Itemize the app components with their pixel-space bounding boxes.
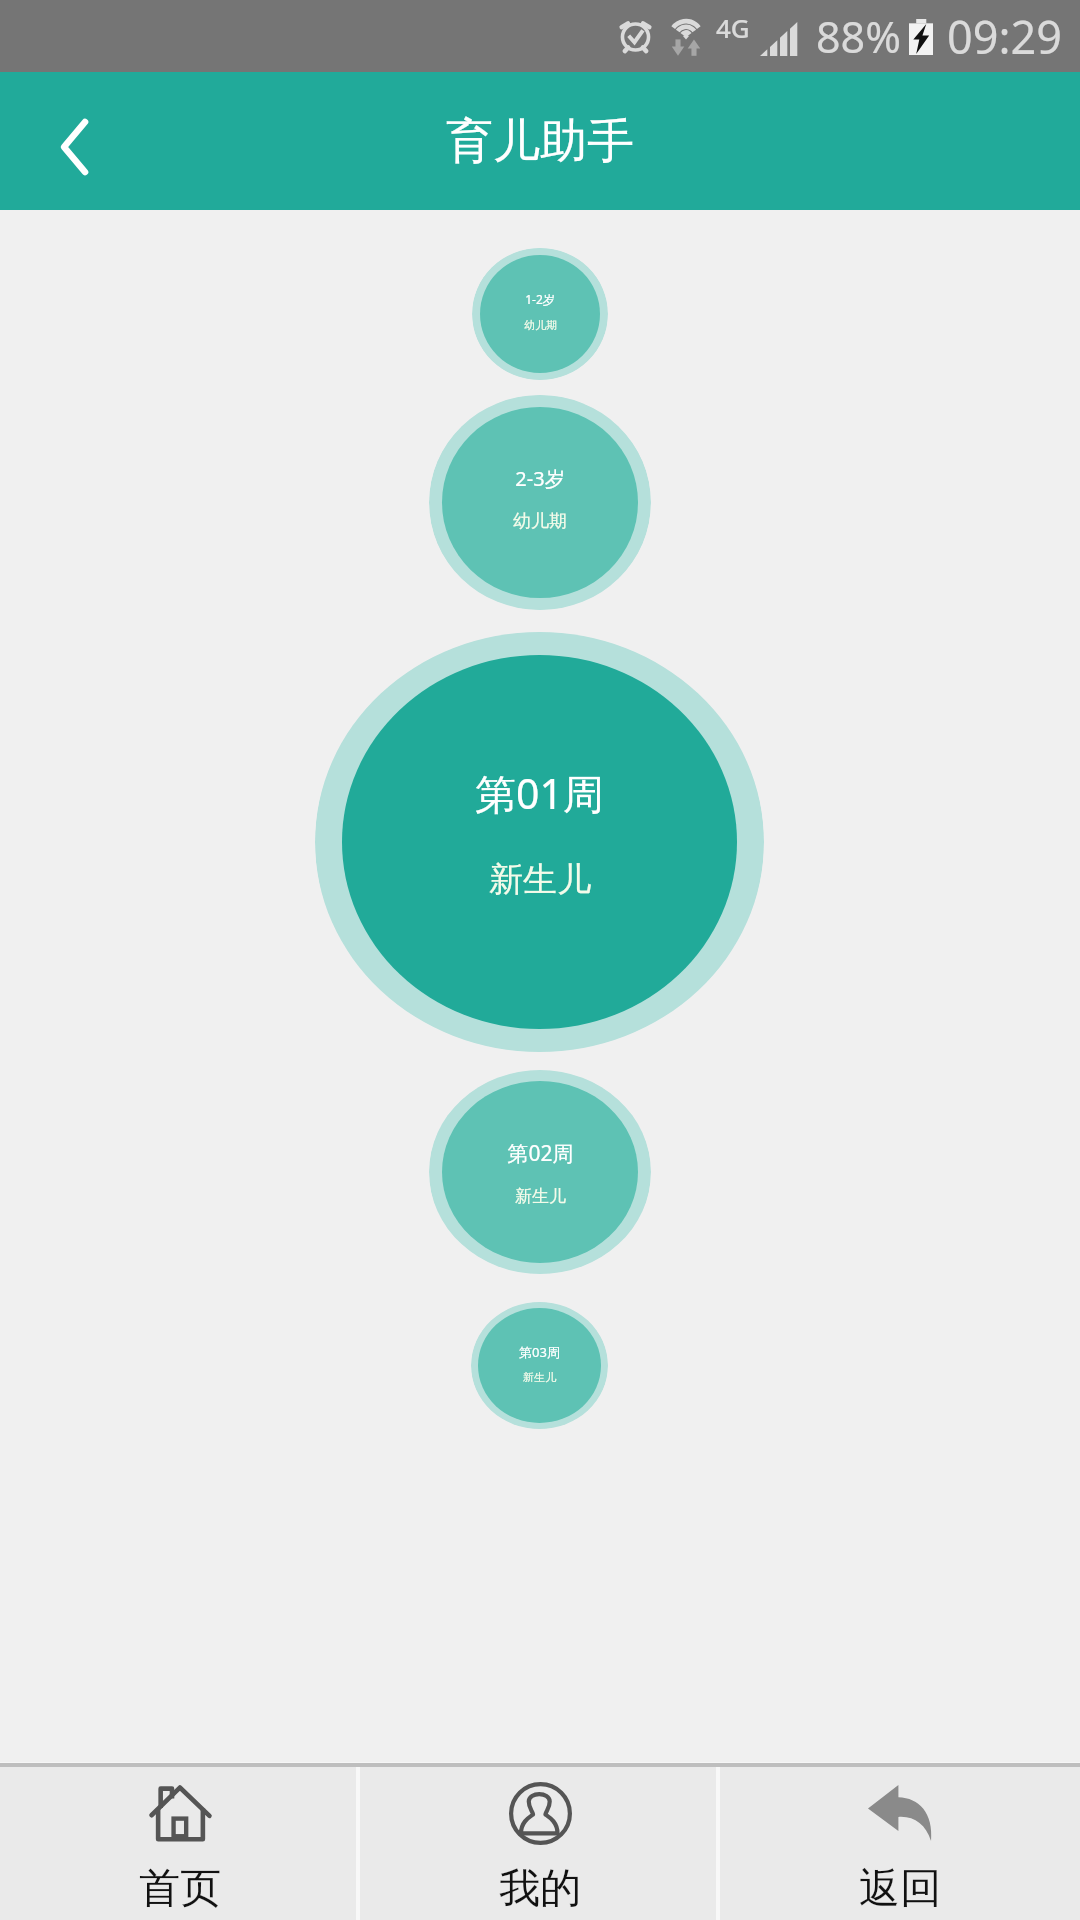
staticText: 返回: [859, 1863, 941, 1915]
button[interactable]: 第03周: [471, 1302, 608, 1429]
button[interactable]: Home: [0, 1767, 360, 1920]
staticText: 首页: [139, 1863, 221, 1915]
staticText: 2-3岁: [515, 465, 565, 492]
staticText: 我的: [499, 1863, 581, 1915]
button[interactable]: 第02周: [429, 1070, 651, 1274]
staticText: 09:29: [947, 6, 1063, 67]
button[interactable]: 第01周: [315, 632, 764, 1052]
staticText: 幼儿期: [524, 318, 557, 332]
button[interactable]: Back: [720, 1767, 1080, 1920]
button[interactable]: 2-3岁: [429, 395, 651, 610]
staticText: 新生儿: [523, 1370, 556, 1384]
button[interactable]: Back: [34, 107, 114, 187]
button[interactable]: Profile: [360, 1767, 720, 1920]
staticText: 新生儿: [489, 858, 591, 901]
staticText: 1-2岁: [525, 291, 555, 307]
staticText: 新生儿: [515, 1186, 566, 1207]
button[interactable]: 1-2岁: [472, 248, 608, 380]
staticText: 88%: [816, 7, 901, 66]
staticText: 幼儿期: [513, 510, 567, 533]
staticText: 第01周: [475, 765, 604, 821]
staticText: 4G: [716, 10, 750, 45]
staticText: 第02周: [507, 1139, 574, 1168]
staticText: 育儿助手: [446, 112, 634, 171]
staticText: 第03周: [519, 1343, 560, 1361]
